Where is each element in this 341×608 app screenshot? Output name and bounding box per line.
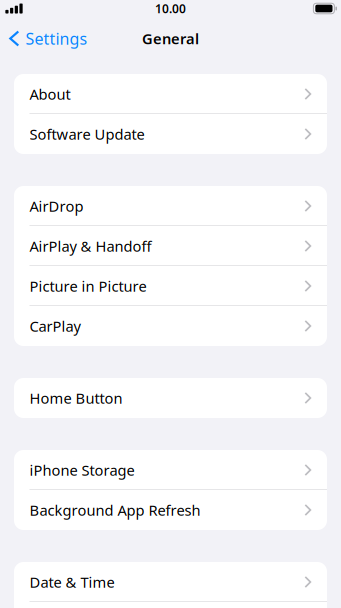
- button[interactable]: Date & Time: [14, 562, 327, 602]
- staticText: Picture in Picture: [29, 276, 146, 296]
- staticText: About: [29, 84, 70, 104]
- button[interactable]: Picture in Picture: [14, 266, 327, 306]
- button[interactable]: Software Update: [14, 114, 327, 154]
- button[interactable]: CarPlay: [14, 306, 327, 346]
- staticText: Home Button: [29, 388, 122, 408]
- staticText: Date & Time: [29, 572, 114, 592]
- button[interactable]: AirDrop: [14, 186, 327, 226]
- staticText: Software Update: [29, 124, 144, 144]
- button[interactable]: iPhone Storage: [14, 450, 327, 490]
- staticText: Background App Refresh: [29, 500, 200, 520]
- staticText: Settings: [26, 28, 88, 49]
- button[interactable]: Settings: [0, 22, 96, 54]
- button[interactable]: AirPlay & Handoff: [14, 226, 327, 266]
- staticText: AirDrop: [29, 196, 83, 216]
- staticText: 10.00: [155, 0, 186, 16]
- button[interactable]: About: [14, 74, 327, 114]
- button[interactable]: Background App Refresh: [14, 490, 327, 530]
- staticText: CarPlay: [29, 316, 80, 336]
- staticText: AirPlay & Handoff: [29, 236, 151, 256]
- staticText: General: [142, 29, 199, 48]
- staticText: iPhone Storage: [29, 460, 134, 480]
- button[interactable]: Home Button: [14, 378, 327, 418]
